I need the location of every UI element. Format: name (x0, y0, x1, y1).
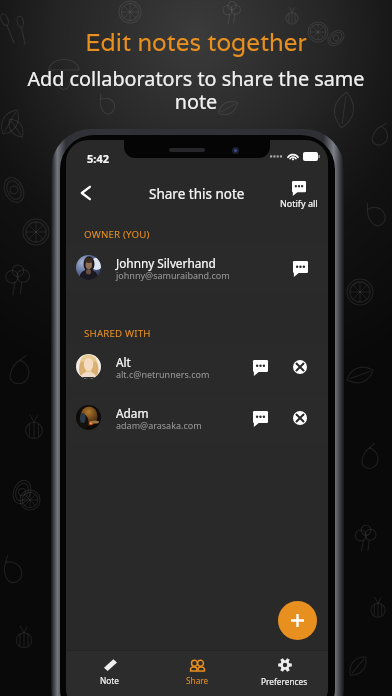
staticText: Edit notes together (85, 27, 307, 58)
staticText: Preferences (261, 676, 308, 687)
staticText: johnny@samuraiband.com (116, 269, 230, 281)
button[interactable]: Share (154, 651, 241, 694)
button[interactable]: Message (246, 353, 274, 381)
staticText: Add collaborators to share the same note (21, 65, 371, 114)
staticText: OWNER (YOU) (84, 228, 150, 241)
button[interactable]: Message (286, 254, 314, 282)
staticText: Alt (116, 354, 131, 370)
staticText: alt.c@netrunners.com (116, 368, 210, 380)
button[interactable]: Remove (286, 353, 314, 381)
button[interactable]: Adam (66, 394, 328, 442)
staticText: Share this note (149, 185, 245, 203)
staticText: 5:42 (87, 151, 109, 166)
staticText: Notify all (280, 197, 318, 209)
button[interactable]: Message (246, 404, 274, 432)
button[interactable]: Alt (66, 343, 328, 391)
staticText: Note (100, 675, 120, 686)
button[interactable]: Add collaborator (278, 601, 317, 640)
staticText: adam@arasaka.com (116, 419, 202, 431)
staticText: Johnny Silverhand (116, 255, 216, 271)
button[interactable]: Preferences (241, 651, 328, 694)
staticText: Adam (116, 405, 149, 421)
button[interactable]: Remove (286, 404, 314, 432)
button[interactable]: Note (66, 651, 154, 694)
staticText: SHARED WITH (84, 327, 151, 340)
button[interactable]: Johnny Silverhand (66, 244, 328, 292)
button[interactable]: Back (72, 179, 99, 206)
button[interactable]: Notify all (279, 178, 318, 209)
staticText: Share (186, 675, 209, 686)
